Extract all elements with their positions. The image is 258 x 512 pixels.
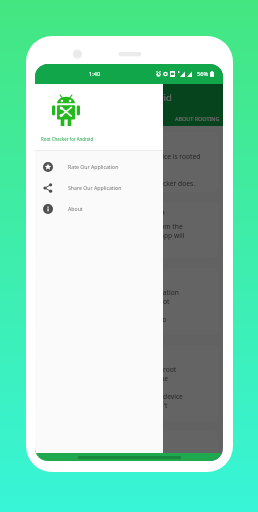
button[interactable]: ABOUT ROOTING [172,112,223,125]
staticText: Rate Our Application [68,163,119,170]
button[interactable]: What is Rooting? [40,345,218,421]
staticText: grant the root for the app you want to [47,315,167,324]
staticText: file on it. It simply needs Superuser [47,170,158,179]
staticText: Rooting itself is quite safe, but if you… [47,451,179,460]
staticText: This app will check whether your device … [47,152,201,161]
staticText: Root Checker for Android [59,91,172,104]
staticText: Root Checker for Android [41,136,94,142]
staticText: or not by just accessing a single [47,161,147,170]
staticText: access permission like every root checke… [47,179,195,188]
button[interactable]: About [35,198,163,219]
staticText: 1:40 [89,70,101,78]
staticText: How to know rooted or not? [47,208,165,220]
staticText: you privileges to modify code on the dev… [47,392,183,401]
staticText: access to the Android source code (the [47,374,169,383]
staticText: 56% [197,70,209,78]
staticText: Share Our Application [68,184,122,191]
staticText: Root Checker [47,138,104,150]
button[interactable]: Rate Our Application [35,156,163,177]
staticText: that the device manufacturer wouldn't [47,401,168,410]
staticText: ABOUT ROOTING [175,115,220,122]
staticText: About [68,205,83,212]
staticText: Download and install Kingroot Applicatio… [47,288,179,297]
button[interactable]: How to get root access? [40,268,218,335]
button[interactable]: Root Checker [40,132,218,192]
button[interactable]: Is it safe? [40,431,218,461]
staticText: Rooting is the process used to attain ro… [47,365,177,374]
staticText: root. After granting permission, the app… [47,231,185,240]
staticText: This application needs permission from t… [47,222,183,231]
button[interactable]: Share Our Application [35,177,163,198]
staticText: from Google play store or use Kingroot [47,297,170,306]
button[interactable]: How to know rooted or not? [40,202,218,258]
